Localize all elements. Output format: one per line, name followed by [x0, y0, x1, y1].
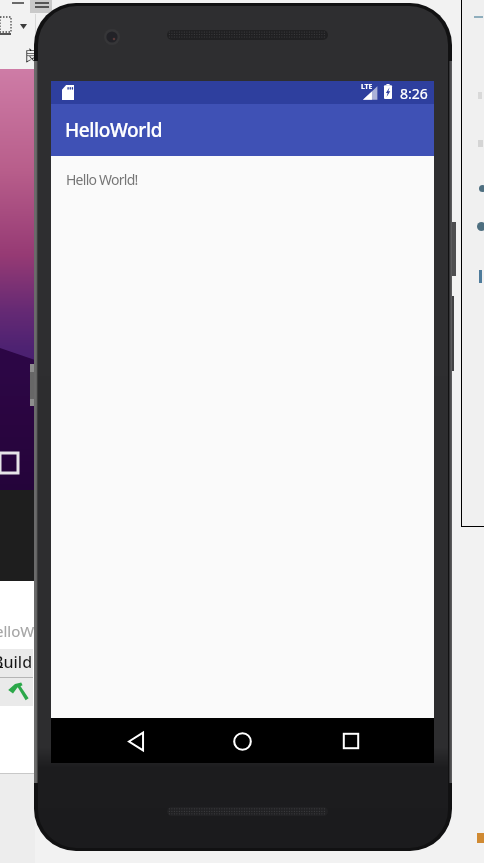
staticText: Hello World!: [66, 170, 138, 189]
button[interactable]: Recents: [329, 719, 373, 763]
staticText: 8:26: [400, 84, 428, 103]
button[interactable]: Home: [220, 719, 264, 763]
staticText: 良: [24, 47, 39, 66]
staticText: Build: [0, 651, 33, 673]
staticText: LTE: [361, 82, 373, 92]
staticText: elloW: [0, 621, 35, 641]
staticText: HelloWorld: [65, 117, 163, 143]
button[interactable]: Back: [114, 719, 158, 763]
